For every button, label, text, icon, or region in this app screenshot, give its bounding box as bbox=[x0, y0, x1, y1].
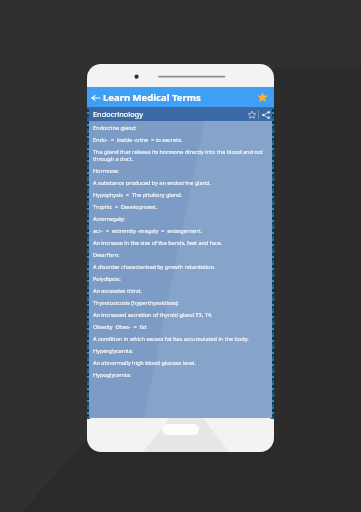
staticText: Endocrine gland: bbox=[93, 124, 137, 131]
staticText: An abnormally high blood glucose level. bbox=[93, 359, 196, 366]
staticText: Endo- = inside -crine = to secrete. bbox=[93, 136, 183, 143]
staticText: Endocrinology bbox=[93, 109, 143, 119]
staticText: acr- = extremity -megaly = enlargement. bbox=[93, 227, 202, 234]
staticText: Hormone: bbox=[93, 167, 120, 174]
staticText: Hyperglycemia: bbox=[93, 347, 134, 354]
staticText: Hypoglycemia: bbox=[93, 371, 132, 378]
staticText: The gland that release its hormone direc… bbox=[93, 148, 267, 162]
staticText: A condition in which excess fat has accu… bbox=[93, 335, 249, 342]
staticText: Trophic = Development. bbox=[93, 203, 158, 210]
staticText: An increased secretion of thyroid gland … bbox=[93, 311, 213, 318]
button[interactable]: Endocrinology bbox=[89, 107, 272, 121]
staticText: A disorder characterized by growth retar… bbox=[93, 263, 216, 270]
button[interactable]: Home bbox=[162, 424, 199, 435]
button[interactable]: Favorite bbox=[253, 88, 272, 107]
staticText: An excessive thirst. bbox=[93, 287, 143, 294]
staticText: Acromegaly: bbox=[93, 215, 126, 222]
staticText: Learn Medical Terms bbox=[103, 91, 201, 104]
staticText: Polydipsia: bbox=[93, 275, 121, 282]
staticText: A substance produced by an endocrine gla… bbox=[93, 179, 211, 186]
staticText: Hypophysis = The pituitary gland. bbox=[93, 191, 183, 198]
staticText: Obesity Obes- = fat bbox=[93, 323, 147, 330]
staticText: Thyrotoxicosis (hyperthyroidism): bbox=[93, 299, 179, 306]
staticText: An increase in the size of the hands, fe… bbox=[93, 239, 223, 246]
staticText: Dwarfism: bbox=[93, 251, 120, 258]
button[interactable]: Share bbox=[259, 108, 272, 121]
button[interactable]: Back bbox=[88, 90, 103, 105]
button[interactable]: Bookmark bbox=[245, 108, 258, 121]
